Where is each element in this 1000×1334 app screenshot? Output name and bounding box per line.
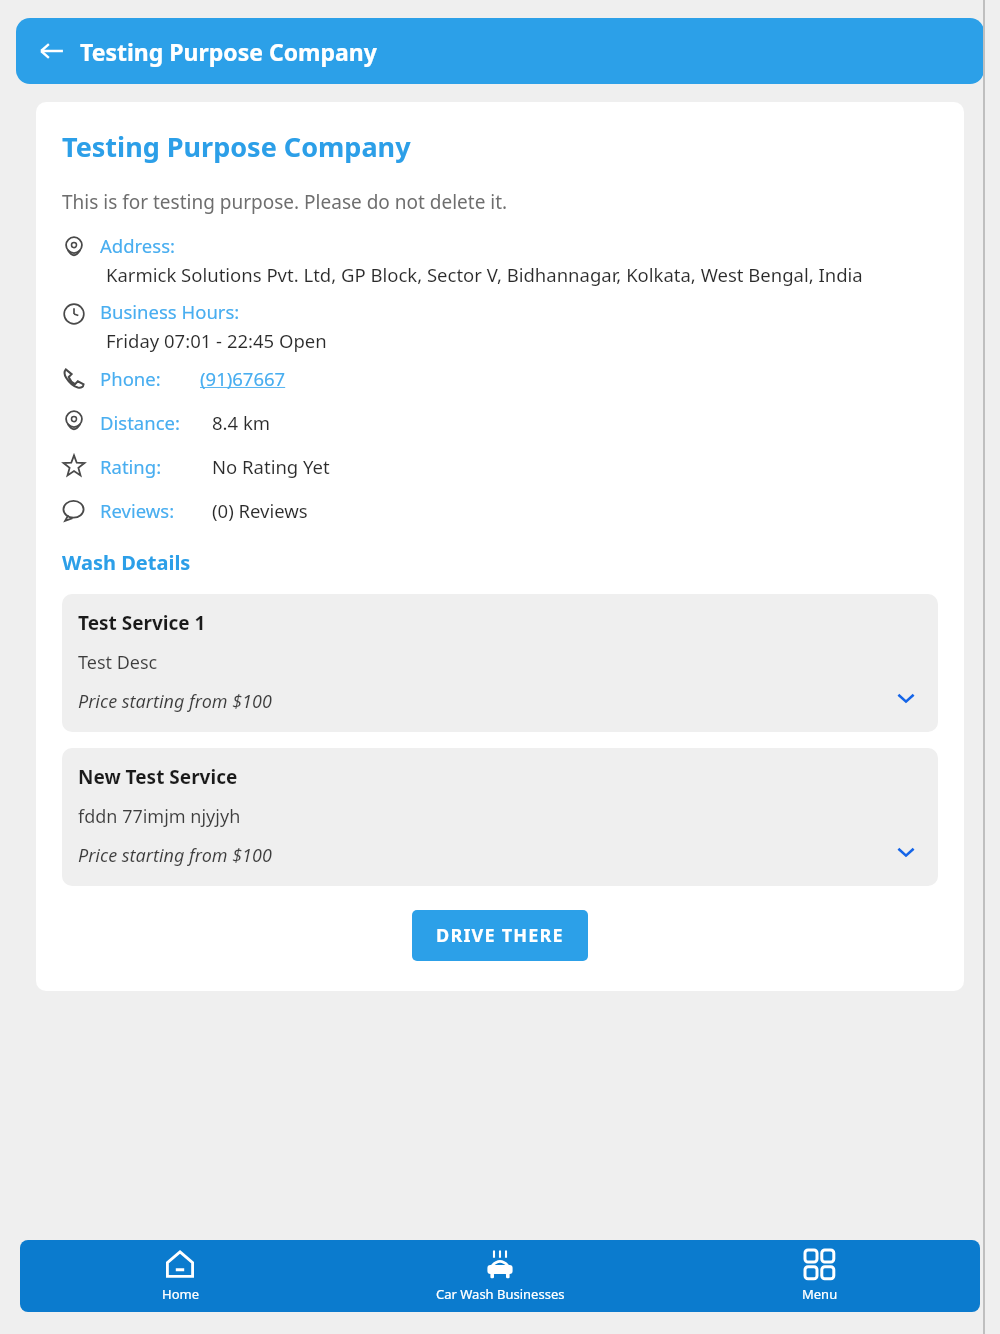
staticText: Test Desc <box>78 650 158 675</box>
staticText: Menu <box>802 1285 838 1303</box>
staticText: No Rating Yet <box>212 454 330 479</box>
staticText: Testing Purpose Company <box>80 36 377 67</box>
staticText: Wash Details <box>62 549 191 576</box>
staticText: Testing Purpose Company <box>62 128 411 165</box>
button[interactable]: Home <box>20 1240 340 1312</box>
staticText: Friday 07:01 - 22:45 Open <box>106 328 327 353</box>
staticText: Reviews: <box>100 498 175 523</box>
staticText: Car Wash Businesses <box>436 1285 565 1303</box>
button[interactable]: Expand <box>890 836 922 868</box>
button[interactable]: Menu <box>660 1240 980 1312</box>
staticText: Price starting from $100 <box>78 689 272 714</box>
staticText: Rating: <box>100 454 162 479</box>
button[interactable]: DRIVE THERE <box>412 910 588 961</box>
staticText: Price starting from $100 <box>78 843 272 868</box>
button[interactable]: Expand <box>890 682 922 714</box>
staticText: Business Hours: <box>100 299 240 324</box>
staticText: fddn 77imjm njyjyh <box>78 804 241 829</box>
staticText: Phone: <box>100 366 161 391</box>
button[interactable]: Back <box>30 29 74 73</box>
staticText: New Test Service <box>78 764 238 790</box>
staticText: Address: <box>100 233 175 258</box>
staticText: This is for testing purpose. Please do n… <box>62 189 508 215</box>
staticText: Test Service 1 <box>78 610 206 636</box>
staticText: DRIVE THERE <box>436 923 564 948</box>
staticText: Karmick Solutions Pvt. Ltd, GP Block, Se… <box>106 262 863 287</box>
staticText: Home <box>162 1285 199 1303</box>
staticText: 8.4 km <box>212 410 271 435</box>
staticText: (0) Reviews <box>212 498 308 523</box>
staticText: (91)67667 <box>200 366 286 391</box>
button[interactable]: Car Wash Businesses <box>340 1240 660 1312</box>
button[interactable]: Test Service 1 <box>62 594 938 732</box>
button[interactable]: (91)67667 <box>200 366 286 391</box>
staticText: Distance: <box>100 410 180 435</box>
button[interactable]: New Test Service <box>62 748 938 886</box>
